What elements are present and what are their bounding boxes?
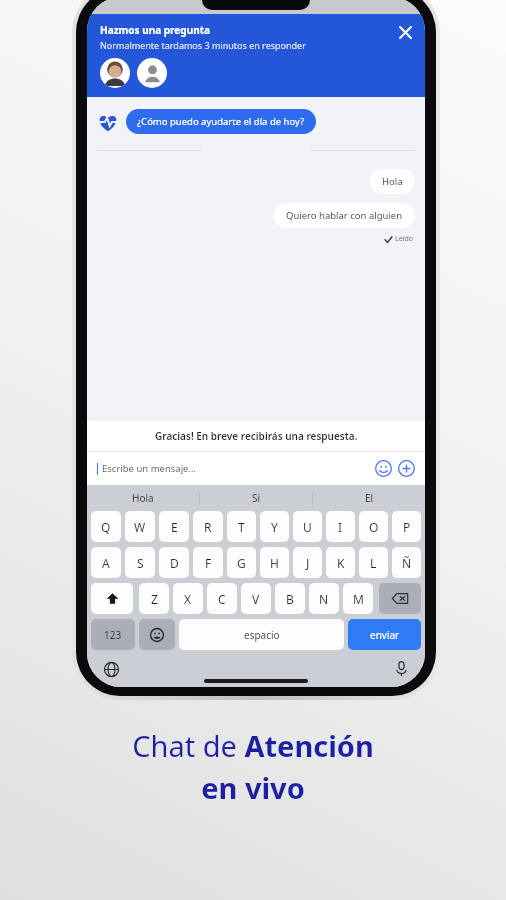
- button[interactable]: Borrar: [379, 583, 421, 614]
- button[interactable]: ¿Cómo puedo ayudarte el día de hoy?: [137, 115, 305, 128]
- staticText: Escribe un mensaje...: [102, 462, 197, 475]
- button[interactable]: V: [241, 583, 271, 614]
- button[interactable]: S: [125, 547, 155, 578]
- button[interactable]: B: [275, 583, 305, 614]
- staticText: H: [270, 555, 279, 571]
- staticText: Leído: [395, 234, 413, 244]
- staticText: 123: [104, 628, 122, 642]
- staticText: Quiero hablar con alguien: [286, 209, 403, 222]
- button[interactable]: K: [326, 547, 355, 578]
- staticText: P: [403, 519, 411, 535]
- staticText: I: [338, 519, 343, 535]
- button[interactable]: C: [207, 583, 237, 614]
- button[interactable]: Emoji: [139, 619, 175, 650]
- staticText: en vivo: [201, 768, 305, 807]
- button[interactable]: Mayúsculas: [91, 583, 133, 614]
- button[interactable]: Hola: [382, 175, 403, 188]
- button[interactable]: Cambiar idioma: [101, 659, 121, 679]
- button[interactable]: L: [359, 547, 388, 578]
- button[interactable]: E: [159, 511, 189, 542]
- staticText: N: [319, 591, 329, 607]
- button[interactable]: Emoji: [375, 460, 392, 477]
- staticText: Hola: [132, 491, 154, 505]
- button[interactable]: M: [343, 583, 373, 614]
- button[interactable]: H: [260, 547, 289, 578]
- staticText: S: [137, 555, 144, 571]
- staticText: ¿Cómo puedo ayudarte el día de hoy?: [137, 115, 305, 128]
- staticText: Normalmente tardamos 3 minutos en respon…: [100, 39, 306, 51]
- button[interactable]: Z: [139, 583, 169, 614]
- staticText: F: [205, 555, 212, 571]
- button[interactable]: Quiero hablar con alguien: [286, 209, 403, 222]
- staticText: C: [218, 591, 226, 607]
- staticText: D: [170, 555, 179, 571]
- button[interactable]: espacio: [179, 619, 344, 650]
- staticText: K: [337, 555, 345, 571]
- button[interactable]: X: [173, 583, 203, 614]
- staticText: espacio: [244, 628, 280, 642]
- staticText: U: [303, 519, 312, 535]
- button[interactable]: O: [359, 511, 388, 542]
- button[interactable]: G: [227, 547, 256, 578]
- staticText: El: [365, 491, 374, 505]
- staticText: Hazmos una pregunta: [100, 23, 210, 37]
- staticText: O: [369, 519, 379, 535]
- button[interactable]: N: [309, 583, 339, 614]
- button[interactable]: T: [227, 511, 256, 542]
- button[interactable]: J: [293, 547, 322, 578]
- staticText: G: [237, 555, 246, 571]
- staticText: Hola: [382, 175, 403, 188]
- button[interactable]: Cerrar: [394, 21, 416, 43]
- button[interactable]: U: [293, 511, 322, 542]
- button[interactable]: R: [193, 511, 223, 542]
- staticText: W: [134, 519, 146, 535]
- button[interactable]: Dictado por voz: [391, 659, 411, 679]
- staticText: A: [102, 555, 110, 571]
- button[interactable]: enviar: [348, 619, 421, 650]
- staticText: Y: [271, 519, 278, 535]
- staticText: Chat de Atención: [132, 726, 374, 765]
- staticText: M: [353, 591, 364, 607]
- staticText: X: [184, 591, 192, 607]
- staticText: T: [238, 519, 245, 535]
- button[interactable]: D: [159, 547, 189, 578]
- staticText: B: [286, 591, 294, 607]
- staticText: Si: [252, 491, 261, 505]
- staticText: Ñ: [402, 555, 412, 571]
- staticText: E: [171, 519, 178, 535]
- button[interactable]: Si: [200, 485, 312, 511]
- staticText: Z: [151, 591, 158, 607]
- button[interactable]: Escribe un mensaje...: [97, 462, 375, 475]
- staticText: Q: [101, 519, 111, 535]
- button[interactable]: Y: [260, 511, 289, 542]
- button[interactable]: Hola: [87, 485, 199, 511]
- button[interactable]: El: [313, 485, 425, 511]
- button[interactable]: A: [91, 547, 121, 578]
- button[interactable]: I: [326, 511, 355, 542]
- staticText: V: [252, 591, 260, 607]
- button[interactable]: Adjuntar: [398, 460, 415, 477]
- button[interactable]: Q: [91, 511, 121, 542]
- staticText: L: [370, 555, 377, 571]
- staticText: R: [204, 519, 212, 535]
- button[interactable]: P: [392, 511, 421, 542]
- staticText: enviar: [370, 628, 400, 642]
- staticText: Gracias! En breve recibirás una respuest…: [155, 429, 358, 443]
- button[interactable]: F: [193, 547, 223, 578]
- button[interactable]: Ñ: [392, 547, 421, 578]
- button[interactable]: 123: [91, 619, 135, 650]
- button[interactable]: W: [125, 511, 155, 542]
- staticText: J: [306, 555, 310, 571]
